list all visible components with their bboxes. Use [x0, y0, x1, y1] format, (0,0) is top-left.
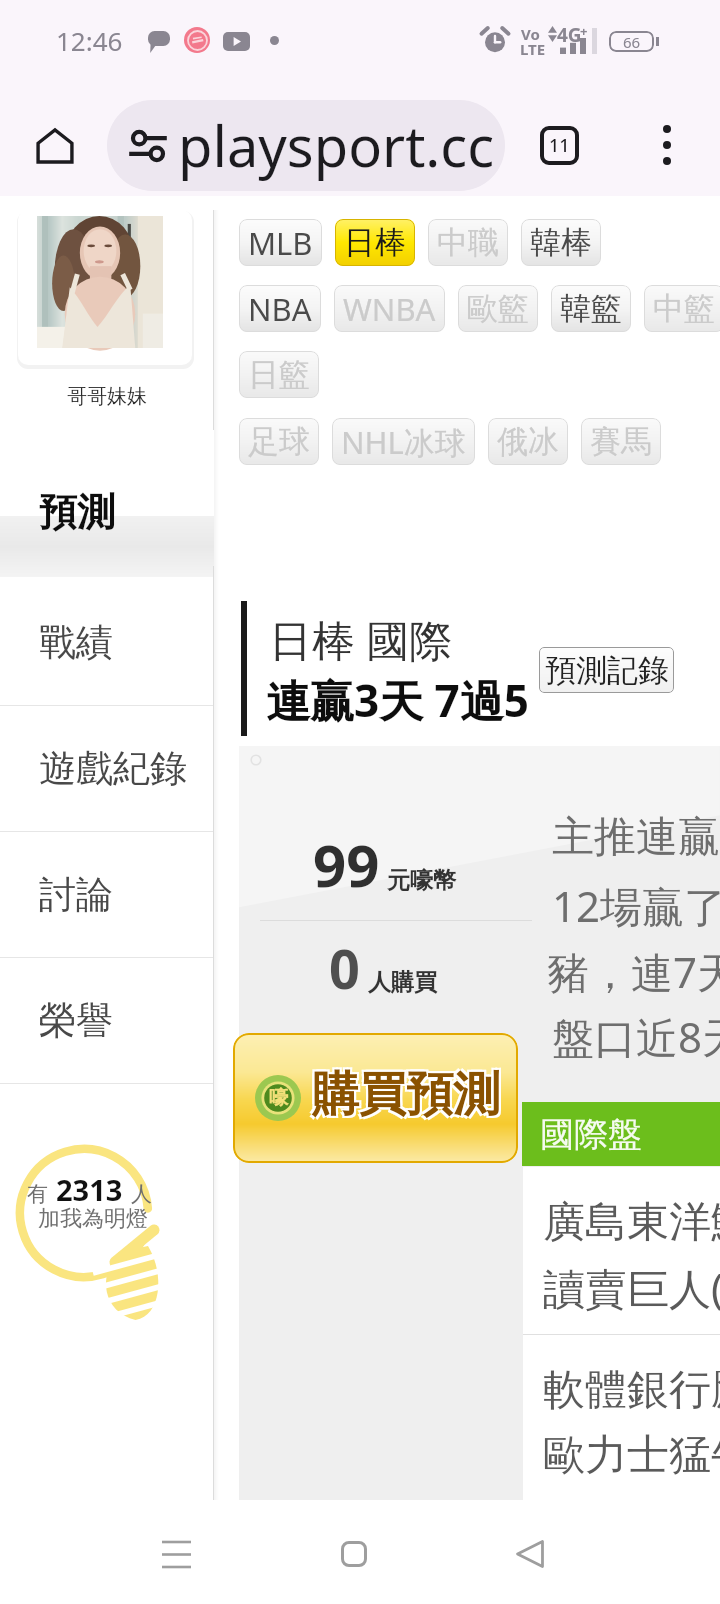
- staticText: 66: [623, 32, 641, 52]
- staticText: 人購買: [368, 968, 437, 997]
- button[interactable]: Recent apps: [136, 1514, 216, 1594]
- staticText: 遊戲紀錄: [39, 745, 187, 792]
- button[interactable]: Home: [314, 1514, 394, 1594]
- staticText: 12場贏了: [552, 877, 720, 934]
- button[interactable]: 廣島東洋鯉: [523, 1167, 720, 1334]
- staticText: 豬，連7天: [547, 943, 720, 1000]
- button[interactable]: playsport.cc: [107, 100, 505, 191]
- staticText: 歐力士猛牛: [543, 1429, 720, 1482]
- button[interactable]: 日籃: [239, 351, 319, 398]
- staticText: 2313: [56, 1170, 123, 1209]
- staticText: 99: [313, 825, 380, 904]
- staticText: 加我為明燈: [38, 1205, 148, 1233]
- button[interactable]: 賽馬: [581, 418, 661, 465]
- button[interactable]: 足球: [239, 418, 319, 465]
- staticText: 榮譽: [39, 997, 113, 1044]
- button[interactable]: Home: [21, 112, 89, 180]
- staticText: MLB: [248, 222, 313, 264]
- button[interactable]: 軟體銀行鷹: [523, 1335, 720, 1503]
- button[interactable]: More options: [634, 112, 700, 178]
- staticText: 預測: [39, 488, 115, 536]
- staticText: 日籃: [248, 355, 310, 394]
- button[interactable]: 預測記錄: [539, 647, 674, 693]
- button[interactable]: 遊戲紀錄: [0, 706, 215, 831]
- staticText: 元嚎幣: [387, 866, 456, 895]
- staticText: 軟體銀行鷹: [543, 1364, 720, 1417]
- button[interactable]: NHL冰球: [332, 418, 475, 465]
- staticText: 廣島東洋鯉: [543, 1196, 720, 1249]
- button[interactable]: MLB: [239, 219, 322, 266]
- staticText: 有: [27, 1181, 48, 1207]
- button[interactable]: NBA: [239, 285, 321, 332]
- staticText: 4G: [557, 22, 582, 48]
- button[interactable]: WNBA: [334, 285, 445, 332]
- button[interactable]: 歐籃: [458, 285, 538, 332]
- staticText: 韓棒: [530, 223, 592, 262]
- staticText: NHL冰球: [341, 421, 466, 463]
- staticText: playsport.cc: [178, 107, 495, 183]
- staticText: 主推連贏: [552, 811, 720, 864]
- staticText: 中籃: [653, 289, 715, 328]
- staticText: LTE: [520, 39, 546, 59]
- staticText: 預測記錄: [545, 651, 669, 690]
- staticText: Vo: [521, 24, 540, 44]
- button[interactable]: 嚎: [233, 1033, 518, 1163]
- staticText: 讀賣巨人(: [543, 1259, 720, 1316]
- button[interactable]: 日棒: [335, 219, 415, 266]
- staticText: 日棒: [344, 223, 406, 262]
- button[interactable]: 韓籃: [551, 285, 631, 332]
- button[interactable]: 戰績: [0, 580, 215, 705]
- staticText: 哥哥妹妹: [67, 384, 147, 409]
- button[interactable]: 中籃: [644, 285, 720, 332]
- button[interactable]: 中職: [428, 219, 508, 266]
- staticText: 討論: [39, 871, 113, 918]
- button[interactable]: 俄冰: [488, 418, 568, 465]
- button[interactable]: Tabs: [526, 112, 592, 178]
- staticText: 購買預測: [314, 1067, 502, 1126]
- staticText: WNBA: [343, 288, 436, 330]
- button[interactable]: Profile photo: [18, 210, 192, 365]
- staticText: NBA: [248, 288, 312, 330]
- staticText: 足球: [248, 422, 310, 461]
- button[interactable]: 韓棒: [521, 219, 601, 266]
- button[interactable]: 討論: [0, 832, 215, 957]
- staticText: 嚎: [269, 1086, 288, 1110]
- staticText: 歐籃: [467, 289, 529, 328]
- staticText: 人: [131, 1181, 152, 1207]
- staticText: 0: [329, 931, 360, 1005]
- staticText: 盤口近8天: [552, 1008, 720, 1065]
- staticText: 12:46: [56, 23, 123, 58]
- staticText: 國際盤: [540, 1113, 642, 1156]
- staticText: +: [580, 22, 588, 40]
- staticText: 賽馬: [590, 422, 652, 461]
- staticText: 11: [549, 133, 570, 158]
- staticText: 戰績: [39, 619, 113, 666]
- staticText: 購買預測: [310, 1067, 498, 1126]
- button[interactable]: 榮譽: [0, 958, 215, 1083]
- staticText: 購買預測: [312, 1065, 500, 1124]
- staticText: 購買預測: [314, 1063, 502, 1122]
- staticText: 日棒 國際: [269, 610, 453, 669]
- staticText: 購買預測: [310, 1063, 498, 1122]
- button[interactable]: Back: [490, 1514, 570, 1594]
- staticText: 俄冰: [497, 422, 559, 461]
- staticText: 連贏3天 7過5: [266, 670, 529, 730]
- staticText: 韓籃: [560, 289, 622, 328]
- staticText: 中職: [437, 223, 499, 262]
